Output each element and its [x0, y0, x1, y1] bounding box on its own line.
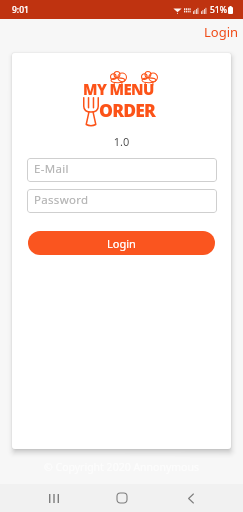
button[interactable]: Login: [190, 19, 243, 53]
staticText: Login: [107, 236, 136, 251]
staticText: ORDER: [99, 98, 156, 122]
button[interactable]: E-Mail: [27, 158, 217, 182]
staticText: MY MENU: [83, 79, 154, 99]
staticText: 1.0: [12, 134, 231, 149]
staticText: 9:01: [12, 4, 29, 16]
staticText: E-Mail: [34, 161, 69, 177]
staticText: Login: [204, 23, 239, 41]
staticText: Password: [34, 192, 89, 208]
button[interactable]: Login: [28, 231, 215, 255]
button[interactable]: Recents: [40, 484, 68, 512]
button[interactable]: Back: [177, 484, 205, 512]
staticText: 51%: [210, 4, 227, 16]
button[interactable]: Password: [27, 189, 217, 213]
button[interactable]: Home: [108, 484, 136, 512]
